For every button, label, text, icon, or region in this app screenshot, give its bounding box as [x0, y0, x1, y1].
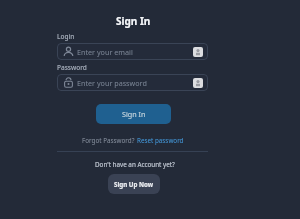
- staticText: Don't have an Account yet?: [95, 160, 175, 169]
- button[interactable]: Reset password: [137, 136, 184, 145]
- staticText: Forgot Password?: [82, 136, 137, 145]
- staticText: Sign In: [122, 109, 146, 119]
- staticText: Enter your password: [77, 78, 147, 88]
- staticText: Login: [57, 32, 75, 41]
- button[interactable]: Sign In: [96, 104, 171, 124]
- staticText: Sign Up Now: [114, 180, 154, 188]
- staticText: Enter your email: [77, 47, 133, 57]
- button[interactable]: Enter your email: [57, 43, 208, 60]
- button[interactable]: Sign Up Now: [108, 174, 160, 194]
- staticText: Sign In: [116, 14, 151, 28]
- button[interactable]: Enter your password: [57, 74, 208, 91]
- staticText: Password: [57, 63, 87, 72]
